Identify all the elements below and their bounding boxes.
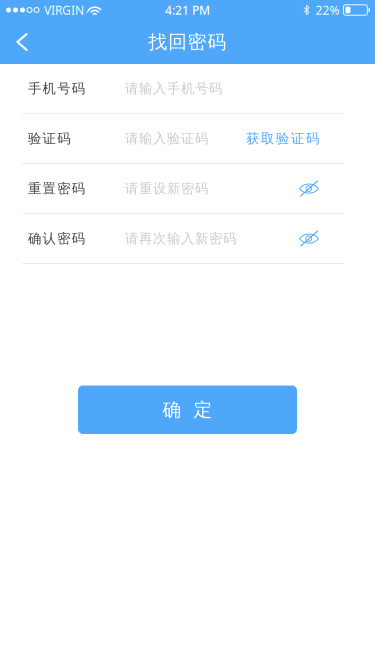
button[interactable]: 显示密码 <box>299 180 319 197</box>
button[interactable]: 获取验证码 <box>246 130 319 147</box>
staticText: 确认密码 <box>28 230 85 247</box>
staticText: 验证码 <box>28 130 70 147</box>
button[interactable]: 显示密码 <box>299 230 319 247</box>
button[interactable]: 确 定 <box>78 385 297 434</box>
staticText: 22% <box>315 2 339 18</box>
staticText: 找回密码 <box>149 30 226 53</box>
staticText: 重置密码 <box>28 180 85 197</box>
staticText: 请重设新密码 <box>125 180 208 197</box>
staticText: VIRGIN <box>44 2 84 18</box>
staticText: 确 定 <box>162 398 212 421</box>
staticText: 4:21 PM <box>165 2 210 18</box>
staticText: 请输入手机号码 <box>125 80 222 97</box>
button[interactable]: 返回 <box>0 20 44 64</box>
staticText: 请再次输入新密码 <box>125 230 236 247</box>
staticText: 获取验证码 <box>246 130 319 147</box>
staticText: 请输入验证码 <box>125 130 208 147</box>
staticText: 手机号码 <box>28 80 85 97</box>
